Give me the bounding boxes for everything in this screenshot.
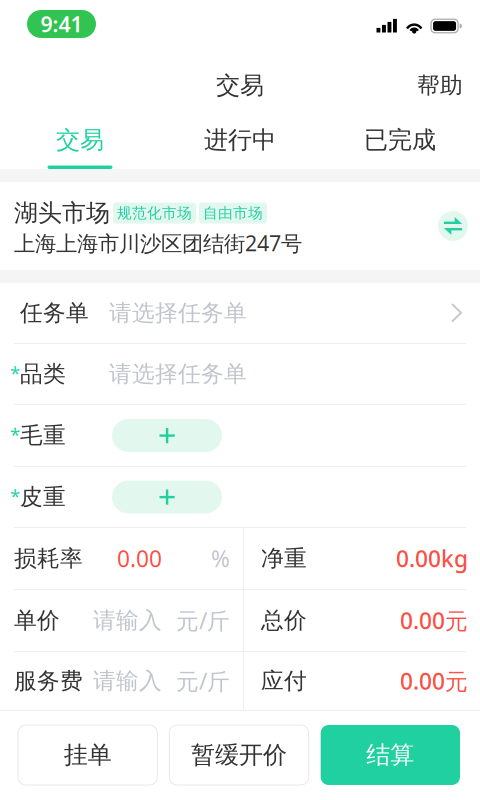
staticText: 自由市场 [203,204,263,222]
staticText: 上海上海市川沙区团结街247号 [14,229,302,257]
button[interactable] [0,283,480,343]
staticText: 毛重 [20,422,66,449]
staticText: 服务费 [14,667,83,695]
button[interactable]: 交易 [0,123,160,169]
staticText: 规范化市场 [117,204,192,222]
staticText: * [10,361,20,385]
staticText: 暂缓开价 [191,740,287,770]
staticText: 元/斤 [176,605,230,635]
staticText: 0.00 [117,543,162,573]
button[interactable]: 添加 [112,480,222,513]
button[interactable]: 已完成 [320,123,480,169]
staticText: 0.00kg [396,543,468,573]
staticText: 结算 [366,740,414,770]
staticText: 交易 [56,125,104,155]
button[interactable]: 结算 [321,725,460,785]
staticText: 挂单 [64,740,112,770]
staticText: * [10,422,20,447]
staticText: 元/斤 [176,666,230,696]
button[interactable]: 暂缓开价 [169,725,309,785]
staticText: 0.00元 [400,666,468,696]
staticText: 0.00元 [400,605,468,635]
staticText: 湖头市场 [14,198,110,228]
staticText: 净重 [261,545,307,572]
button[interactable]: 挂单 [18,725,157,785]
staticText: 已完成 [364,125,436,155]
button[interactable]: 添加 [112,419,222,452]
staticText: 进行中 [204,125,276,155]
staticText: 品类 [20,360,66,388]
staticText: 9:41 [40,10,82,38]
staticText: 任务单 [20,299,89,327]
staticText: 帮助 [417,72,463,99]
staticText: 损耗率 [14,545,83,572]
staticText: 总价 [261,607,307,634]
button[interactable]: 切换市场 [431,204,475,248]
staticText: % [211,543,230,573]
staticText: * [10,484,20,508]
staticText: 交易 [216,71,264,100]
staticText: 请输入 [93,667,162,695]
button[interactable]: * [0,344,480,404]
staticText: 请选择任务单 [109,299,247,327]
button[interactable]: 帮助 [407,62,473,109]
staticText: 单价 [14,607,60,634]
staticText: 请选择任务单 [109,360,247,388]
staticText: 皮重 [20,483,66,511]
staticText: 请输入 [93,607,162,634]
button[interactable]: 进行中 [160,123,320,169]
staticText: 应付 [261,667,307,695]
